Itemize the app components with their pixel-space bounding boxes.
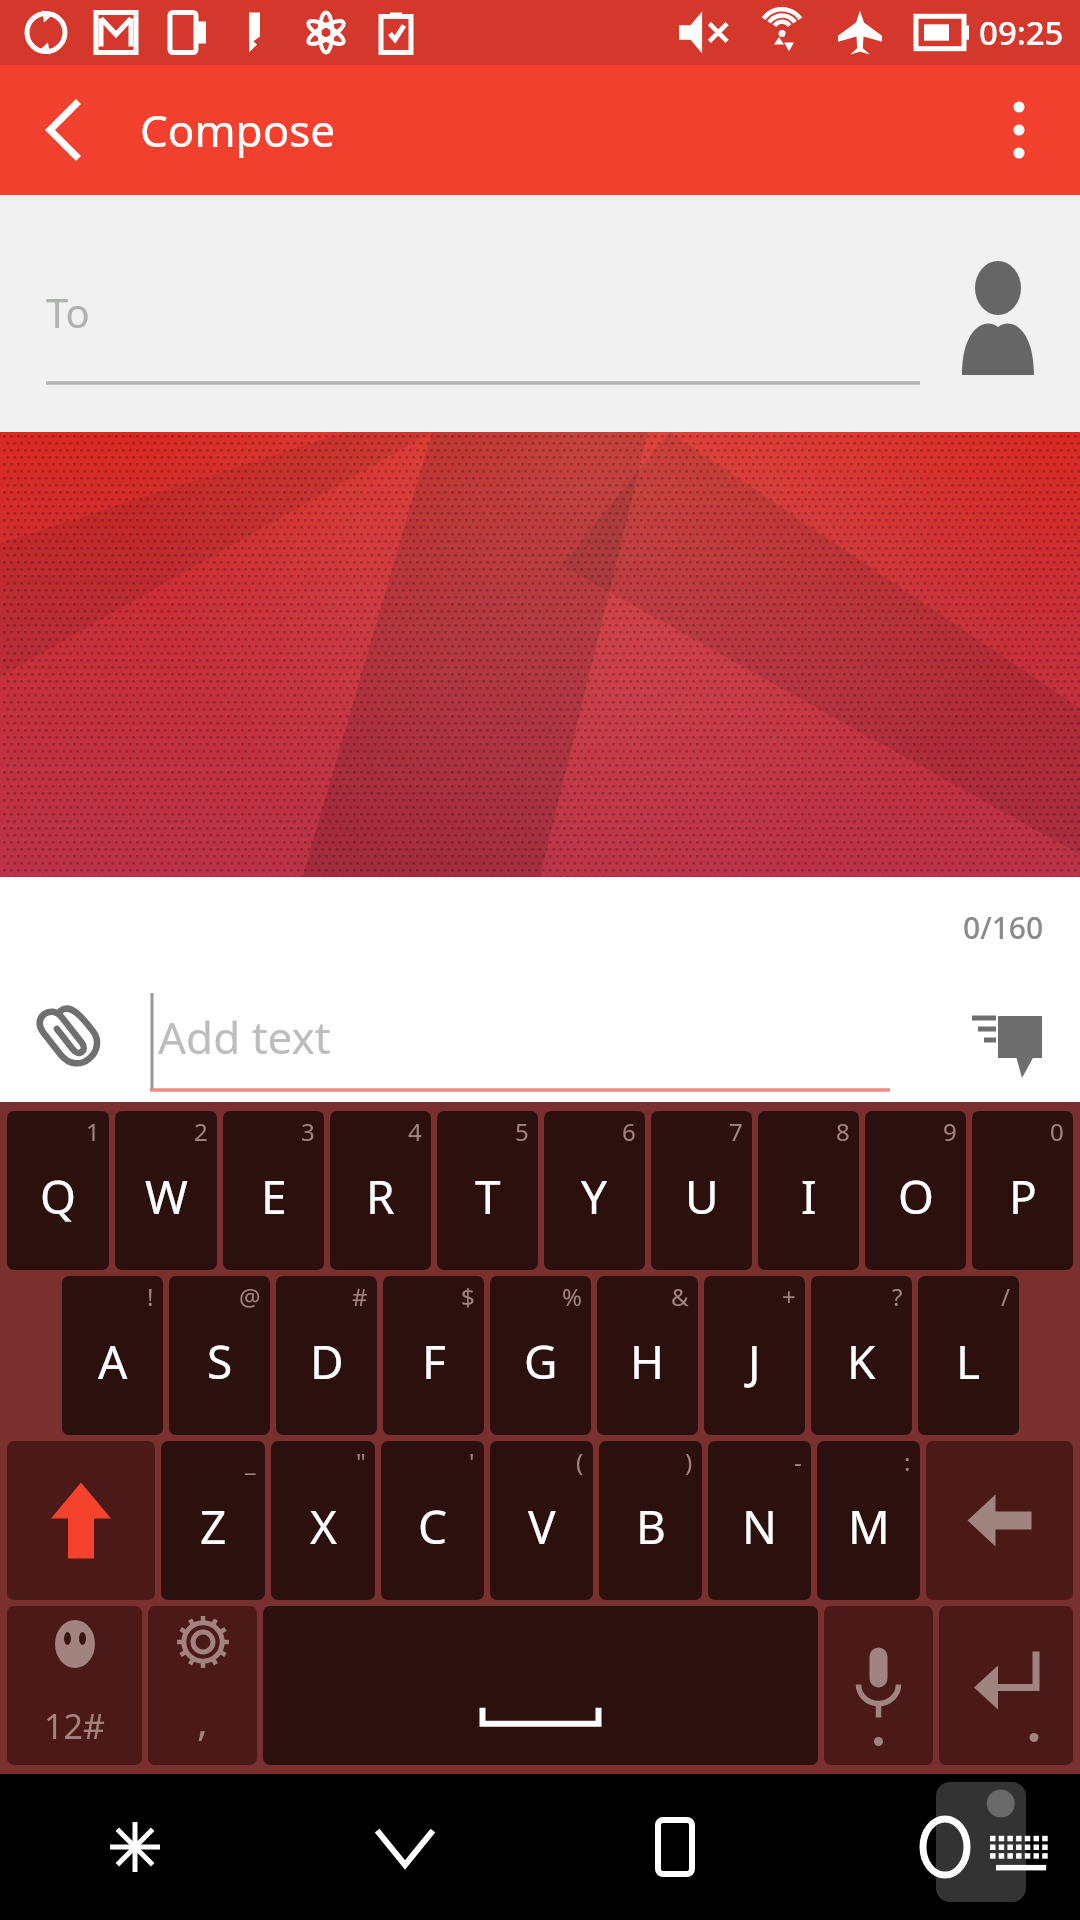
staticText: 8 [836, 1115, 850, 1148]
staticText: 0/160 [963, 907, 1044, 948]
staticText: + [782, 1280, 796, 1313]
button[interactable]: Backspace [926, 1441, 1073, 1600]
button[interactable]: 3 [223, 1111, 324, 1270]
staticText: ( [576, 1445, 584, 1478]
staticText: A [98, 1330, 128, 1393]
staticText: J [748, 1330, 761, 1393]
button[interactable]: _ [161, 1441, 265, 1600]
button[interactable]: % [490, 1276, 591, 1435]
button[interactable]: 4 [330, 1111, 431, 1270]
staticText: P [1009, 1165, 1037, 1228]
staticText: M [848, 1495, 890, 1558]
button[interactable]: Hide keyboard [350, 1792, 460, 1902]
button[interactable]: 2 [115, 1111, 217, 1270]
button[interactable]: 7 [651, 1111, 752, 1270]
button[interactable]: Shift [7, 1441, 155, 1600]
staticText: R [366, 1165, 395, 1228]
button[interactable]: " [271, 1441, 375, 1600]
button[interactable]: ' [381, 1441, 484, 1600]
staticText: O [898, 1165, 934, 1228]
staticText: ' [469, 1445, 475, 1478]
staticText: Add text [158, 1007, 331, 1067]
staticText: ) [685, 1445, 693, 1478]
staticText: U [685, 1165, 719, 1228]
button[interactable]: 6 [544, 1111, 645, 1270]
staticText: $ [461, 1280, 475, 1313]
staticText: , [197, 1693, 208, 1747]
staticText: N [742, 1495, 777, 1558]
staticText: 1 [86, 1115, 100, 1148]
staticText: 0 [1050, 1115, 1064, 1148]
staticText: 5 [515, 1115, 529, 1148]
button[interactable]: / [918, 1276, 1019, 1435]
button[interactable]: 0 [972, 1111, 1073, 1270]
staticText: H [630, 1330, 665, 1393]
button[interactable]: ! [62, 1276, 163, 1435]
staticText: 9 [943, 1115, 957, 1148]
button[interactable]: - [708, 1441, 811, 1600]
button[interactable]: Send message [956, 990, 1056, 1090]
staticText: D [310, 1330, 344, 1393]
staticText: ? [892, 1280, 903, 1313]
button[interactable]: + [704, 1276, 805, 1435]
button[interactable]: Settings and comma [148, 1606, 257, 1765]
staticText: @ [239, 1280, 261, 1313]
button[interactable]: 5 [437, 1111, 538, 1270]
button[interactable]: 8 [758, 1111, 859, 1270]
staticText: ! [147, 1280, 154, 1313]
button[interactable]: & [597, 1276, 698, 1435]
button[interactable]: 9 [865, 1111, 966, 1270]
button[interactable]: Voice input [824, 1606, 933, 1765]
button[interactable]: ) [599, 1441, 702, 1600]
button[interactable]: ( [490, 1441, 593, 1600]
button[interactable]: Add text [150, 977, 890, 1102]
staticText: B [636, 1495, 666, 1558]
staticText: C [418, 1495, 448, 1558]
staticText: & [671, 1280, 689, 1313]
staticText: - [794, 1445, 802, 1478]
button[interactable]: More options [976, 87, 1062, 173]
staticText: 6 [622, 1115, 636, 1148]
staticText: " [356, 1445, 366, 1478]
staticText: Z [200, 1495, 227, 1558]
button[interactable]: Pick contact [948, 243, 1048, 343]
button[interactable]: 12# [7, 1606, 142, 1765]
staticText: 4 [408, 1115, 422, 1148]
staticText: G [524, 1330, 558, 1393]
button[interactable]: Enter [939, 1606, 1073, 1765]
staticText: Q [40, 1165, 76, 1228]
staticText: E [261, 1165, 287, 1228]
button[interactable]: $ [383, 1276, 484, 1435]
button[interactable]: Space [263, 1606, 818, 1765]
staticText: To [46, 285, 90, 339]
button[interactable]: : [817, 1441, 920, 1600]
staticText: 3 [301, 1115, 315, 1148]
button[interactable]: Menu [80, 1792, 190, 1902]
button[interactable]: Home [890, 1792, 1000, 1902]
staticText: F [422, 1330, 446, 1393]
staticText: 7 [729, 1115, 743, 1148]
staticText: Compose [140, 100, 336, 160]
button[interactable]: Attach [22, 990, 122, 1090]
staticText: % [562, 1280, 582, 1313]
staticText: # [352, 1280, 368, 1313]
staticText: S [207, 1330, 233, 1393]
button[interactable]: @ [169, 1276, 270, 1435]
staticText: 09:25 [979, 10, 1064, 55]
staticText: 2 [194, 1115, 208, 1148]
staticText: W [145, 1165, 188, 1228]
staticText: _ [245, 1445, 256, 1478]
staticText: T [475, 1165, 501, 1228]
button[interactable]: # [276, 1276, 377, 1435]
staticText: K [847, 1330, 876, 1393]
staticText: / [1001, 1280, 1010, 1313]
staticText: L [956, 1330, 981, 1393]
staticText: I [801, 1165, 817, 1228]
staticText: 12# [44, 1703, 105, 1749]
button[interactable]: Back [20, 87, 106, 173]
button[interactable]: 1 [7, 1111, 109, 1270]
staticText: : [904, 1445, 911, 1478]
button[interactable]: ? [811, 1276, 912, 1435]
staticText: X [310, 1495, 337, 1558]
button[interactable]: Recents [620, 1792, 730, 1902]
